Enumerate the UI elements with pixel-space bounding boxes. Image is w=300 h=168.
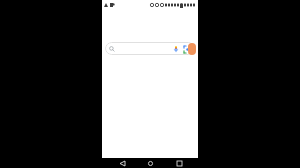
button[interactable]: Voice search [105, 42, 195, 55]
button[interactable]: Recent apps [170, 158, 188, 168]
button[interactable]: Voice search [172, 45, 180, 53]
button[interactable]: Google Lens [183, 45, 191, 53]
button[interactable]: Home [141, 158, 159, 168]
button[interactable]: Back [113, 158, 131, 168]
